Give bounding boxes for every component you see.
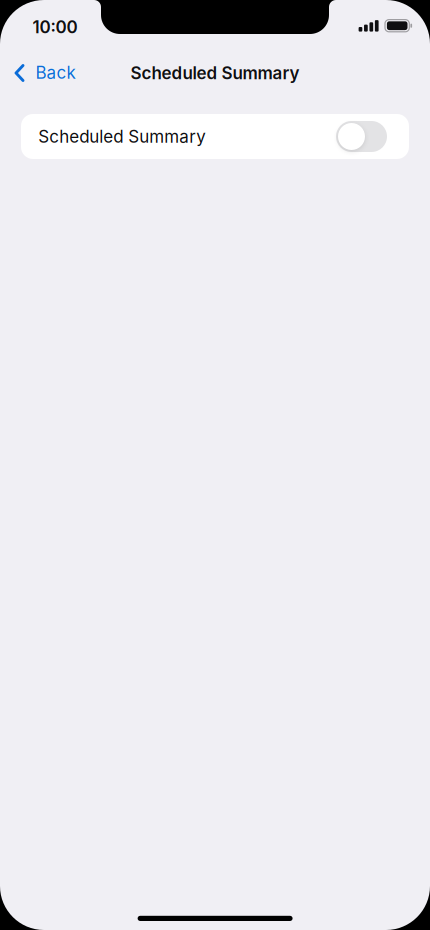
button[interactable]: Back bbox=[0, 51, 110, 95]
staticText: Scheduled Summary bbox=[38, 126, 206, 147]
staticText: Scheduled Summary bbox=[130, 63, 299, 83]
staticText: 10:00 bbox=[32, 17, 77, 37]
staticText: Back bbox=[35, 62, 75, 83]
button[interactable]: Scheduled Summary bbox=[336, 121, 387, 152]
